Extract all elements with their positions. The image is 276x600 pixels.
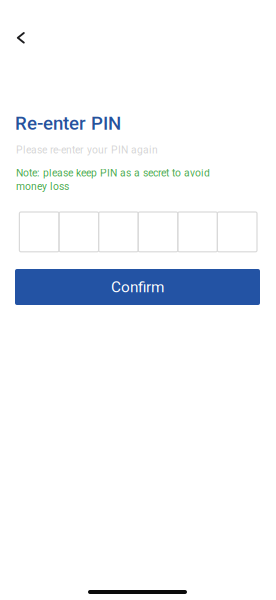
staticText: money loss (16, 180, 69, 193)
staticText: Confirm (111, 278, 164, 296)
staticText: Please re-enter your PIN again (16, 144, 158, 156)
staticText: Note: please keep PIN as a secret to avo… (16, 167, 210, 179)
button[interactable]: Confirm (15, 269, 260, 305)
staticText: Re-enter PIN (15, 112, 121, 134)
button[interactable]: Back (2, 21, 36, 55)
